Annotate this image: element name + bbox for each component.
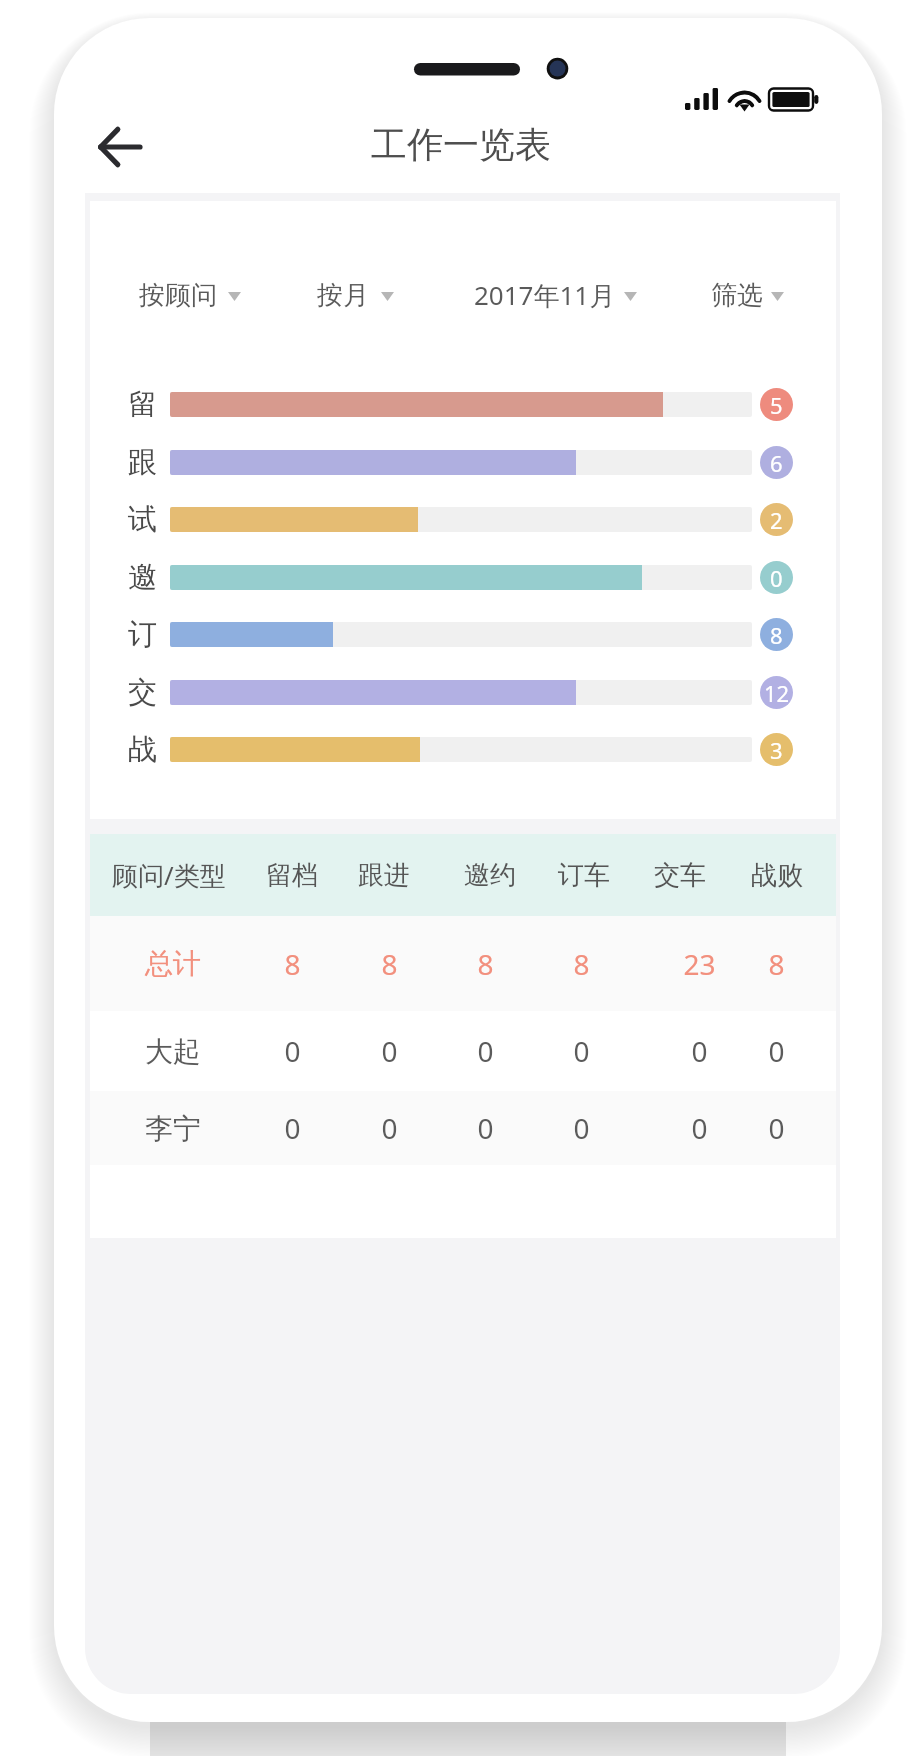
- staticText: 战败: [751, 859, 803, 892]
- button[interactable]: 邀: [90, 548, 836, 606]
- staticText: 8: [381, 945, 398, 983]
- button[interactable]: 2017年11月: [474, 270, 648, 320]
- staticText: 李宁: [145, 1111, 201, 1146]
- staticText: 0: [477, 1109, 494, 1147]
- button[interactable]: 留: [90, 375, 836, 433]
- staticText: 0: [691, 1032, 708, 1070]
- staticText: 0: [768, 1032, 785, 1070]
- staticText: 试: [128, 501, 157, 538]
- staticText: 2: [770, 505, 783, 535]
- staticText: 战: [128, 731, 157, 768]
- button[interactable]: 筛选: [711, 270, 795, 320]
- staticText: 8: [573, 945, 590, 983]
- staticText: 2017年11月: [474, 277, 616, 313]
- button[interactable]: 试: [90, 490, 836, 548]
- staticText: 大起: [145, 1034, 201, 1069]
- staticText: 筛选: [711, 279, 763, 312]
- staticText: 订: [128, 616, 157, 653]
- staticText: 8: [477, 945, 494, 983]
- staticText: 0: [284, 1109, 301, 1147]
- staticText: 订车: [558, 859, 610, 892]
- button[interactable]: 按顾问: [139, 270, 252, 320]
- button[interactable]: 订: [90, 605, 836, 663]
- staticText: 0: [573, 1032, 590, 1070]
- staticText: 顾问/类型: [112, 857, 226, 893]
- staticText: 5: [770, 390, 783, 420]
- staticText: 交车: [654, 859, 706, 892]
- staticText: 0: [284, 1032, 301, 1070]
- staticText: 23: [683, 945, 716, 983]
- staticText: 0: [768, 1109, 785, 1147]
- staticText: 0: [691, 1109, 708, 1147]
- staticText: 留: [128, 386, 157, 423]
- staticText: 按顾问: [139, 279, 217, 312]
- staticText: 0: [770, 563, 783, 593]
- staticText: 跟: [128, 444, 157, 481]
- button[interactable]: 李宁: [90, 1091, 836, 1165]
- staticText: 邀约: [464, 859, 516, 892]
- staticText: 邀: [128, 559, 157, 596]
- button[interactable]: 交: [90, 663, 836, 721]
- staticText: 3: [770, 735, 783, 765]
- staticText: 留档: [266, 859, 318, 892]
- button[interactable]: 大起: [90, 1011, 836, 1091]
- staticText: 6: [770, 448, 783, 478]
- button[interactable]: 战: [90, 720, 836, 778]
- button[interactable]: Back: [87, 114, 153, 180]
- staticText: 0: [477, 1032, 494, 1070]
- staticText: 跟进: [358, 859, 410, 892]
- button[interactable]: 按月: [317, 270, 405, 320]
- staticText: 交: [128, 674, 157, 711]
- staticText: 8: [284, 945, 301, 983]
- staticText: 按月: [317, 279, 369, 312]
- staticText: 8: [768, 945, 785, 983]
- staticText: 总计: [145, 946, 201, 981]
- staticText: 工作一览表: [371, 122, 551, 167]
- staticText: 8: [770, 620, 783, 650]
- staticText: 12: [764, 678, 790, 708]
- staticText: 0: [381, 1032, 398, 1070]
- staticText: 0: [381, 1109, 398, 1147]
- button[interactable]: 跟: [90, 433, 836, 491]
- button[interactable]: 总计: [90, 916, 836, 1011]
- staticText: 0: [573, 1109, 590, 1147]
